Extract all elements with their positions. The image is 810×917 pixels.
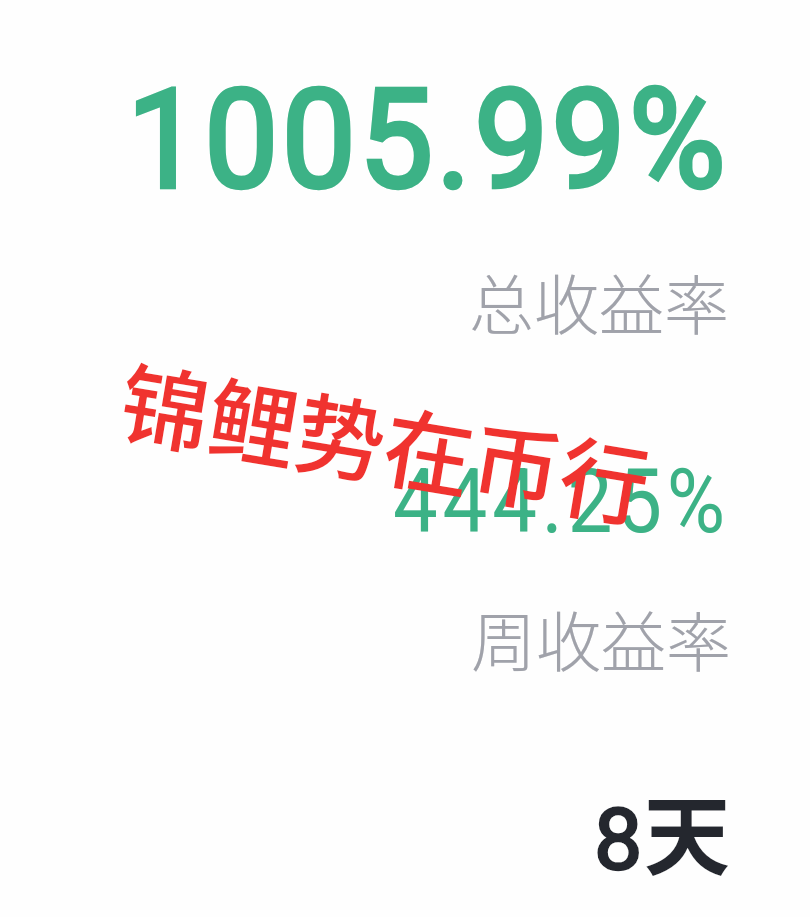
staticText: 1005.99%: [127, 59, 730, 221]
staticText: 总收益率: [469, 254, 730, 348]
button[interactable]: 1005.99%: [127, 59, 730, 221]
staticText: 444.25%: [393, 449, 730, 553]
button[interactable]: 周收益率: [471, 591, 732, 685]
staticText: 8: [594, 789, 643, 890]
other: 锦鲤势在币行 watermark: [111, 333, 659, 548]
staticText: 周收益率: [471, 591, 732, 685]
staticText: 锦鲤势在币行: [111, 333, 659, 548]
button[interactable]: 天: [644, 768, 730, 893]
button[interactable]: 总收益率: [469, 254, 730, 348]
staticText: 天: [644, 768, 730, 893]
button[interactable]: 444.25%: [393, 449, 730, 553]
button[interactable]: 8: [594, 789, 643, 890]
